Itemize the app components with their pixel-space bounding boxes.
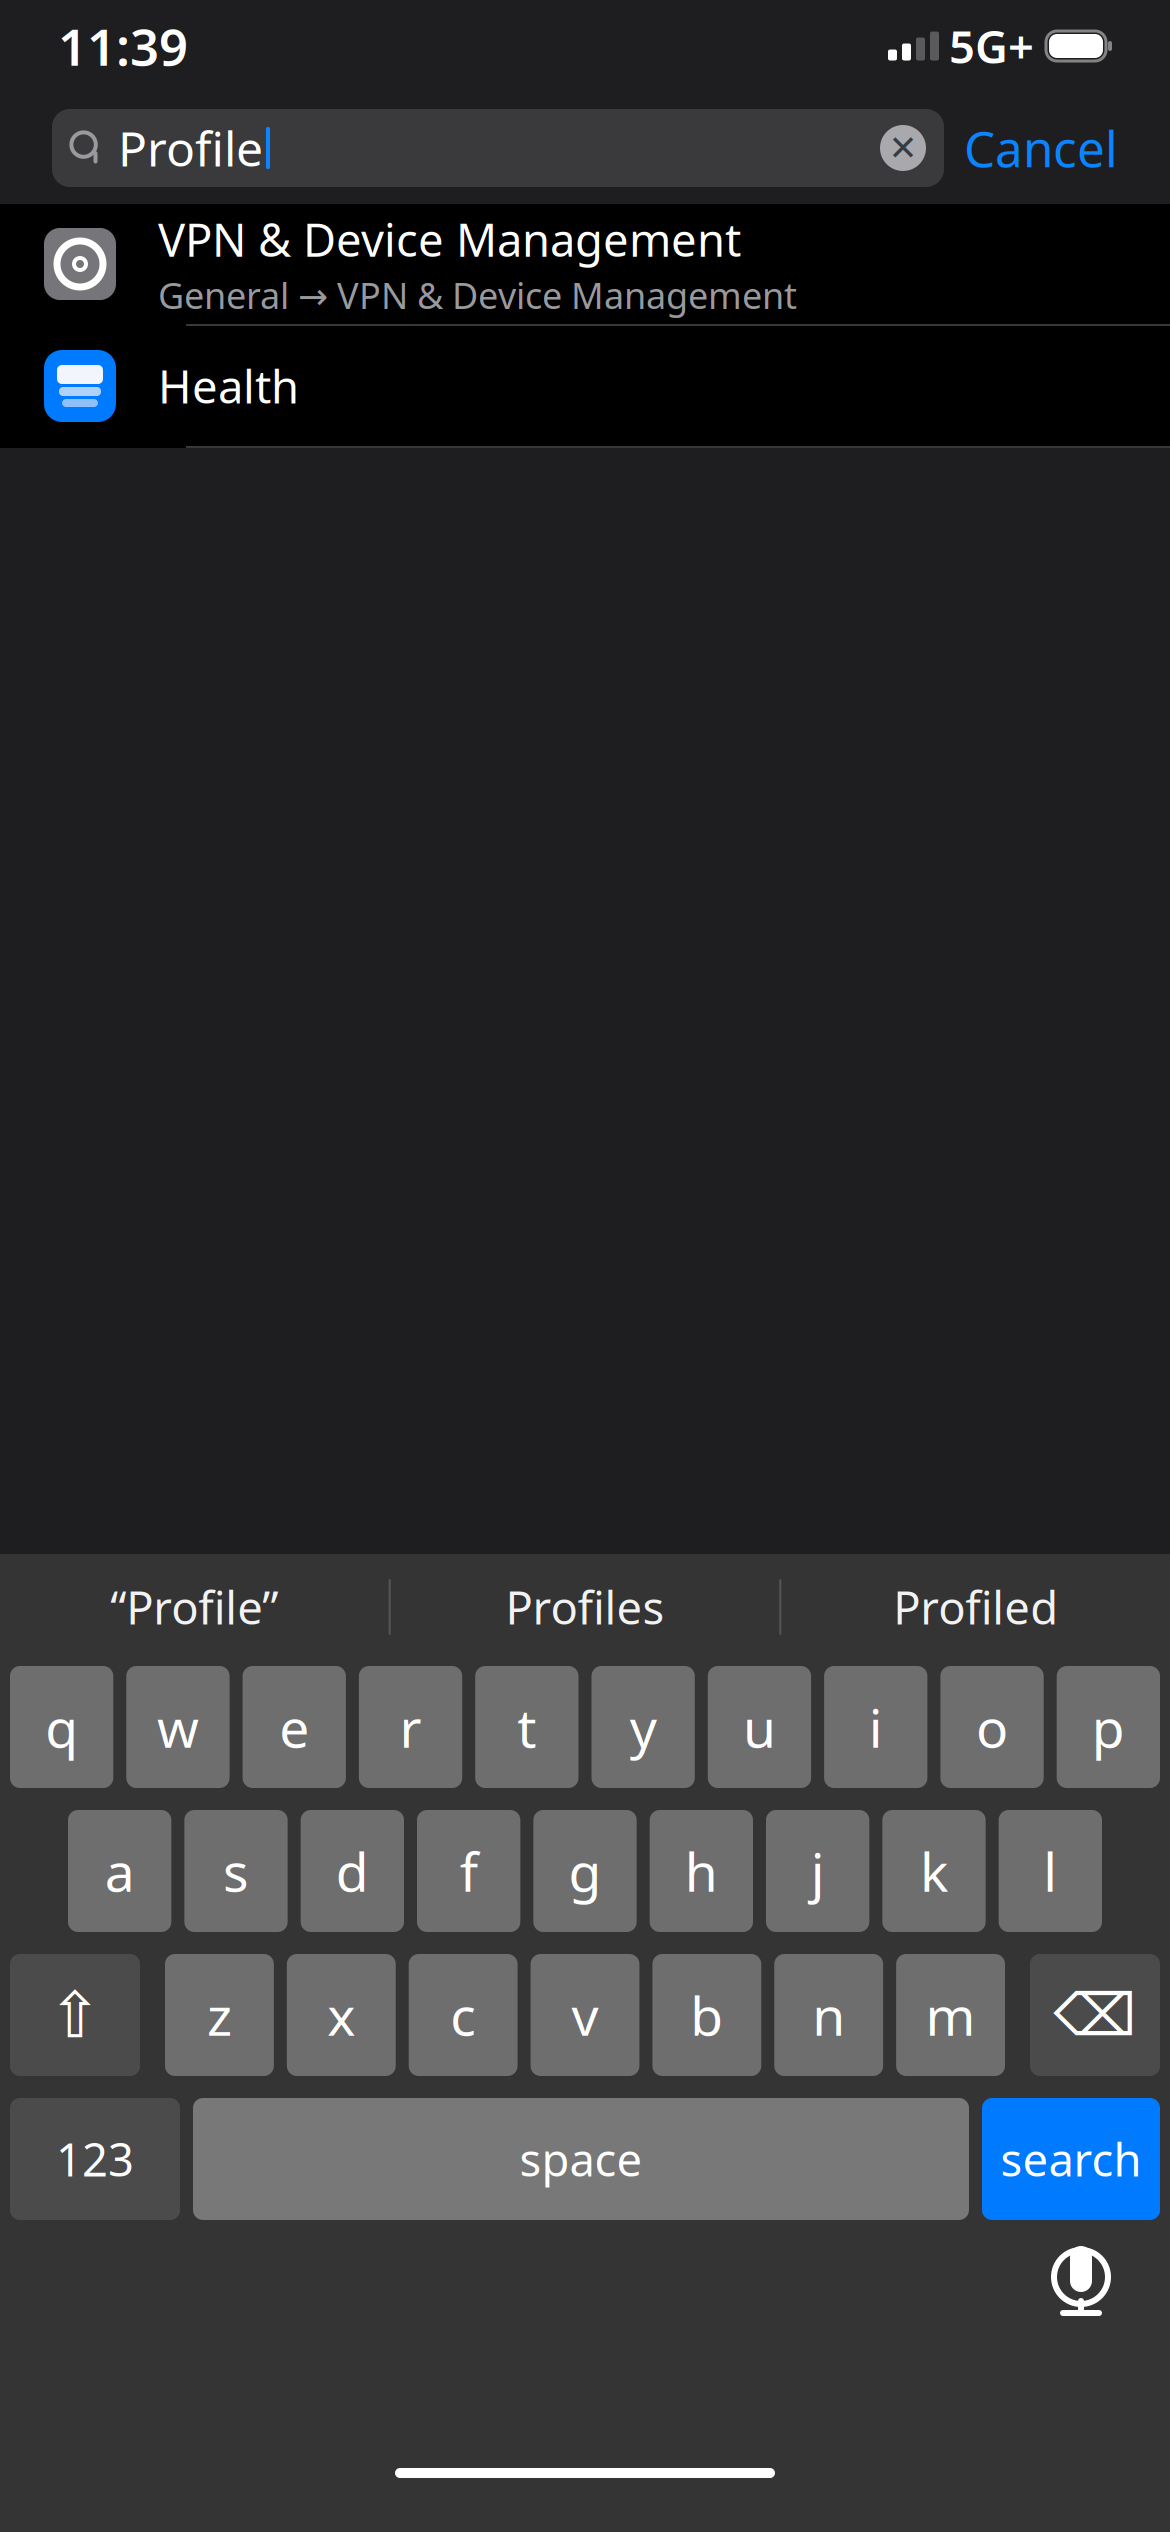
button[interactable]: x	[287, 1954, 396, 2076]
button[interactable]: Cancel	[964, 115, 1118, 181]
staticText: ⌫	[1053, 1982, 1136, 2048]
button[interactable]: space	[193, 2098, 969, 2220]
staticText: 5G+	[949, 16, 1034, 76]
staticText: space	[519, 2129, 642, 2189]
staticText: s	[223, 1836, 249, 1906]
button[interactable]: b	[652, 1954, 761, 2076]
button[interactable]: w	[126, 1666, 230, 1788]
staticText: Health	[158, 356, 299, 416]
button[interactable]: t	[475, 1666, 578, 1788]
button[interactable]: Shift	[10, 1954, 140, 2076]
button[interactable]: Clear text	[880, 125, 944, 171]
staticText: w	[157, 1692, 199, 1762]
staticText: u	[743, 1692, 776, 1762]
staticText: ✕	[888, 128, 917, 168]
button[interactable]: j	[766, 1810, 869, 1932]
button[interactable]: a	[68, 1810, 171, 1932]
staticText: p	[1092, 1692, 1125, 1762]
staticText: “Profile”	[110, 1577, 278, 1637]
staticText: v	[571, 1980, 598, 2050]
button[interactable]: 123	[10, 2098, 180, 2220]
staticText: o	[976, 1692, 1008, 1762]
button[interactable]: e	[243, 1666, 346, 1788]
staticText: z	[207, 1980, 232, 2050]
button[interactable]: n	[774, 1954, 883, 2076]
button[interactable]: search	[982, 2098, 1160, 2220]
staticText: y	[630, 1692, 657, 1762]
staticText: c	[450, 1980, 476, 2050]
staticText: m	[926, 1980, 976, 2050]
staticText: ⇧	[48, 1979, 102, 2051]
button[interactable]: m	[896, 1954, 1005, 2076]
staticText: Profiles	[505, 1577, 664, 1637]
button[interactable]: Health	[0, 326, 1170, 446]
button[interactable]: z	[165, 1954, 274, 2076]
button[interactable]: y	[591, 1666, 695, 1788]
staticText: h	[685, 1836, 718, 1906]
button[interactable]: f	[417, 1810, 520, 1932]
staticText: n	[812, 1980, 845, 2050]
staticText: 11:39	[58, 12, 188, 80]
button[interactable]: Dictate	[1046, 2241, 1170, 2319]
staticText: Profile	[118, 116, 263, 180]
staticText: t	[517, 1692, 536, 1762]
staticText: x	[327, 1980, 355, 2050]
button[interactable]: Profiles	[391, 1554, 779, 1660]
button[interactable]: g	[533, 1810, 637, 1932]
button[interactable]: o	[940, 1666, 1044, 1788]
staticText: d	[336, 1836, 369, 1906]
staticText: l	[1043, 1836, 1057, 1906]
button[interactable]: k	[882, 1810, 986, 1932]
button[interactable]: h	[650, 1810, 753, 1932]
button[interactable]: c	[409, 1954, 518, 2076]
button[interactable]: Delete	[1030, 1954, 1160, 2076]
button[interactable]: Profiled	[781, 1554, 1170, 1660]
button[interactable]: i	[824, 1666, 927, 1788]
button[interactable]: VPN & Device Management	[0, 204, 1170, 324]
staticText: 123	[56, 2129, 134, 2189]
button[interactable]: u	[708, 1666, 811, 1788]
staticText: a	[105, 1836, 135, 1906]
staticText: f	[460, 1836, 478, 1906]
staticText: q	[45, 1692, 78, 1762]
button[interactable]: q	[10, 1666, 113, 1788]
staticText: General → VPN & Device Management	[158, 271, 797, 319]
staticText: search	[1000, 2129, 1141, 2189]
staticText: Profiled	[893, 1577, 1058, 1637]
staticText: VPN & Device Management	[158, 209, 741, 269]
staticText: Cancel	[964, 115, 1118, 181]
button[interactable]: l	[999, 1810, 1102, 1932]
staticText: r	[399, 1692, 421, 1762]
staticText: g	[568, 1836, 601, 1906]
staticText: j	[811, 1836, 825, 1906]
button[interactable]: v	[531, 1954, 639, 2076]
button[interactable]: “Profile”	[0, 1554, 389, 1660]
staticText: k	[920, 1836, 948, 1906]
staticText: i	[869, 1692, 883, 1762]
button[interactable]: s	[184, 1810, 288, 1932]
button[interactable]: r	[359, 1666, 462, 1788]
button[interactable]: d	[301, 1810, 404, 1932]
button[interactable]: p	[1057, 1666, 1160, 1788]
staticText: b	[690, 1980, 723, 2050]
staticText: e	[279, 1692, 309, 1762]
